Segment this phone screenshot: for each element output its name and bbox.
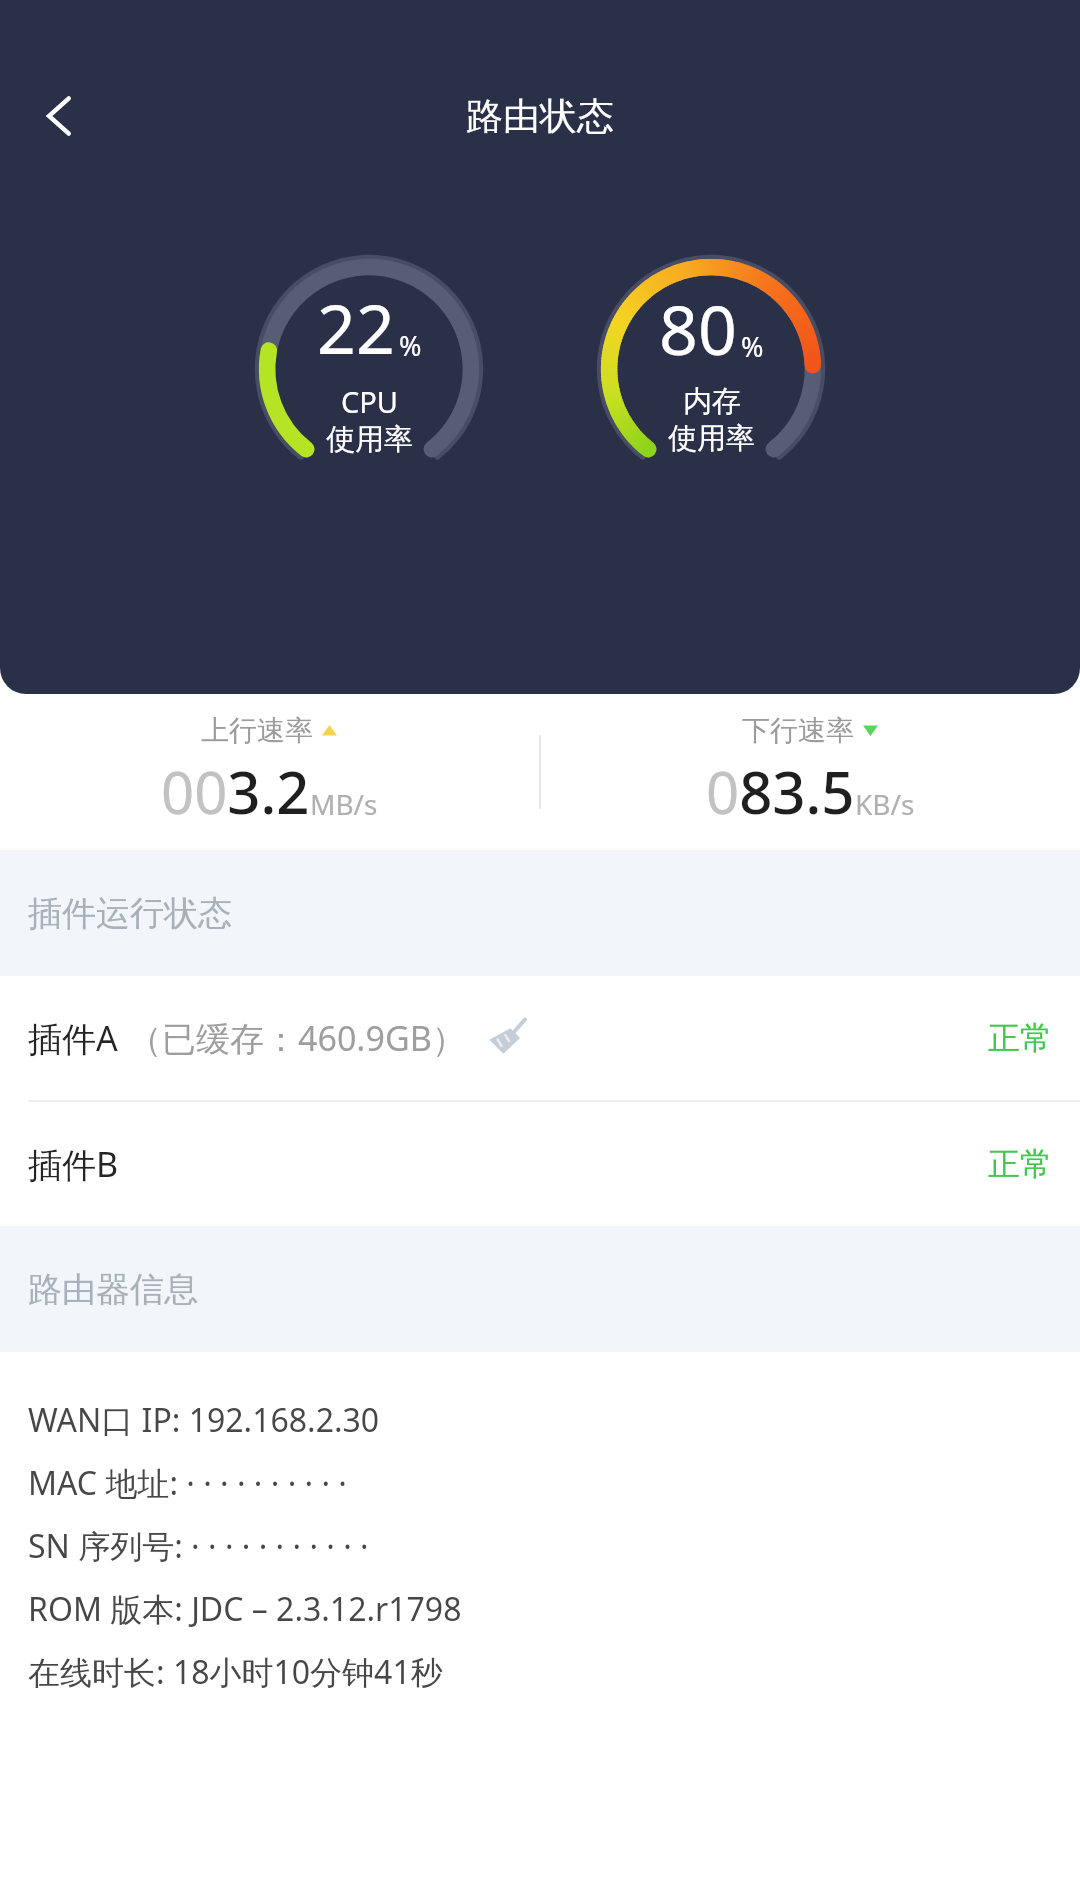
button[interactable]: 插件A — [0, 976, 1080, 1100]
staticText: WAN口 IP: 192.168.2.30 — [28, 1398, 380, 1442]
button[interactable]: Clear cache — [482, 1014, 530, 1062]
staticText: 上行速率 — [201, 713, 313, 748]
staticText: 插件A — [28, 1015, 118, 1061]
staticText: 内存 — [683, 383, 741, 420]
button[interactable]: 下行速率 — [541, 713, 1080, 831]
staticText: 正常 — [988, 1144, 1052, 1184]
button[interactable]: Back — [16, 72, 104, 160]
staticText: MAC 地址: · · · · · · · · · · — [28, 1461, 347, 1505]
staticText: 路由状态 — [466, 93, 614, 140]
staticText: 80 — [659, 282, 737, 375]
staticText: SN 序列号: · · · · · · · · · · · — [28, 1524, 369, 1568]
staticText: % — [399, 327, 422, 364]
staticText: （已缓存：460.9GB） — [128, 1015, 466, 1061]
button[interactable]: 插件B — [0, 1102, 1080, 1226]
button[interactable]: 80 — [590, 248, 832, 490]
staticText: KB/s — [855, 785, 915, 823]
staticText: 插件运行状态 — [28, 892, 232, 935]
staticText: 路由器信息 — [28, 1268, 198, 1311]
button[interactable]: 上行速率 — [0, 713, 539, 831]
staticText: MB/s — [310, 785, 378, 823]
staticText: % — [741, 328, 764, 365]
staticText: 003.2 — [161, 752, 310, 831]
button[interactable]: 22 — [248, 248, 490, 490]
staticText: 正常 — [988, 1018, 1052, 1058]
staticText: 使用率 — [326, 421, 413, 458]
staticText: 在线时长: 18小时10分钟41秒 — [28, 1650, 443, 1694]
staticText: 083.5 — [706, 752, 855, 831]
staticText: ROM 版本: JDC – 2.3.12.r1798 — [28, 1587, 462, 1631]
staticText: CPU — [341, 382, 399, 421]
staticText: 下行速率 — [742, 713, 854, 748]
staticText: 使用率 — [668, 420, 755, 457]
staticText: 22 — [317, 281, 395, 374]
staticText: 插件B — [28, 1141, 119, 1187]
